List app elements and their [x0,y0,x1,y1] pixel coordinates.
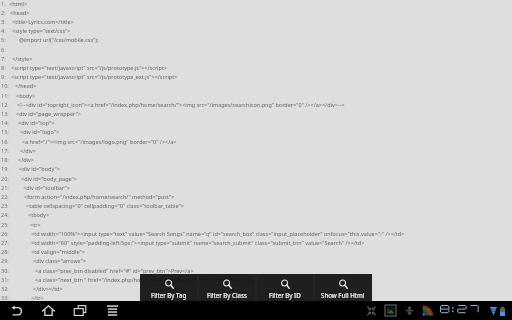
staticText: 14: [1,119,9,126]
staticText: 3: [1,18,6,25]
staticText: </div> [18,156,512,163]
staticText: <form action="/index.php/home/search/" m… [24,193,512,200]
staticText: <script type="text/javascript" src="/js/… [11,64,512,71]
staticText: <div id="logo"> [20,128,512,135]
button[interactable]: Filter By ID [256,274,314,301]
staticText: 25: [1,221,9,228]
staticText: 9: [1,73,6,80]
staticText: </tr> [31,294,512,301]
staticText: 17: [1,147,9,154]
staticText: 23: [1,202,9,209]
staticText: </div></td> [33,285,512,292]
staticText: <td width="100%"><input type="text" valu… [31,230,512,237]
staticText: <a class="prev_btn disabled" href="#" id… [35,267,512,274]
staticText: 12: [1,101,9,108]
staticText: <tr> [30,221,512,228]
staticText: <a class="next_btn " href="/index.php/ho… [35,276,512,283]
staticText: Filter By Class [207,291,247,299]
staticText: <a href="/"><img src="/images/logo.png" … [22,138,512,145]
button[interactable]: Filter By Tag [140,274,198,301]
staticText: <title>Lyrics.com</title> [12,18,512,25]
staticText: <script type="text/javascript" src="/js/… [11,73,512,80]
staticText: 27: [1,239,9,246]
staticText: <body> [16,92,512,99]
staticText: </head> [15,82,512,89]
staticText: <div id="toolbar"> [23,184,512,191]
staticText: <div id="body_page"> [21,175,512,182]
staticText: 13: [1,110,9,117]
staticText: 26: [1,230,9,237]
staticText: Filter By ID [269,291,301,299]
staticText: 18: [1,156,9,163]
button[interactable]: USB connected [401,301,417,320]
staticText: <html> [9,0,512,7]
staticText: 15: [1,128,9,135]
staticText: @import url("/css/mobile.css"); [19,36,512,43]
staticText: Show Full Html [321,291,365,299]
staticText: <div id="body"> [19,165,512,172]
button[interactable]: Menu [99,301,125,320]
staticText: <td width="60" style="padding-left:5px;"… [31,239,512,246]
button[interactable]: Recents [67,301,93,320]
staticText: 20: [1,175,9,182]
staticText: <!--<div id="topright_icon"><a href="/in… [17,101,512,108]
staticText: 22: [1,193,9,200]
staticText: 28: [1,248,9,255]
staticText: <div class="arrows"> [33,257,512,264]
staticText: 30: [1,267,9,274]
button[interactable]: Home [35,301,61,320]
staticText: 7: [1,55,6,62]
staticText: 24: [1,211,9,218]
button[interactable]: Fullscreen [363,301,380,320]
staticText: 32: [1,285,9,292]
staticText: 8: [1,64,6,71]
staticText: 21: [1,184,9,191]
staticText: 19: [1,165,9,172]
staticText: </style> [12,55,512,62]
staticText: </div> [20,147,512,154]
button[interactable]: Filter By Class [198,274,256,301]
button[interactable]: Show Full Html [314,274,372,301]
staticText: <td valign="middle"> [31,248,512,255]
staticText: <div id="top"> [18,119,512,126]
button[interactable]: Screenshot [382,301,398,320]
staticText: 33: [1,294,9,301]
staticText: 10: [1,82,9,89]
staticText: 29: [1,257,9,264]
staticText: Filter By Tag [151,291,187,299]
staticText: <div id="page_wrapper"> [16,110,512,117]
staticText: 11: [1,92,9,99]
staticText: <tbody> [28,211,512,218]
staticText: 6: [1,46,6,53]
button[interactable]: Network [419,301,435,320]
button[interactable]: Back [3,301,29,320]
staticText: <head> [10,9,512,16]
staticText: <style type="text/css"> [12,27,512,34]
staticText: 5: [1,36,6,43]
staticText: <table cellspacing="0" cellpadding="0" c… [26,202,512,209]
staticText: 1: [1,0,6,7]
staticText: 4: [1,27,6,34]
staticText: 2: [1,9,6,16]
staticText: 31: [1,276,9,283]
staticText: 16: [1,138,9,145]
